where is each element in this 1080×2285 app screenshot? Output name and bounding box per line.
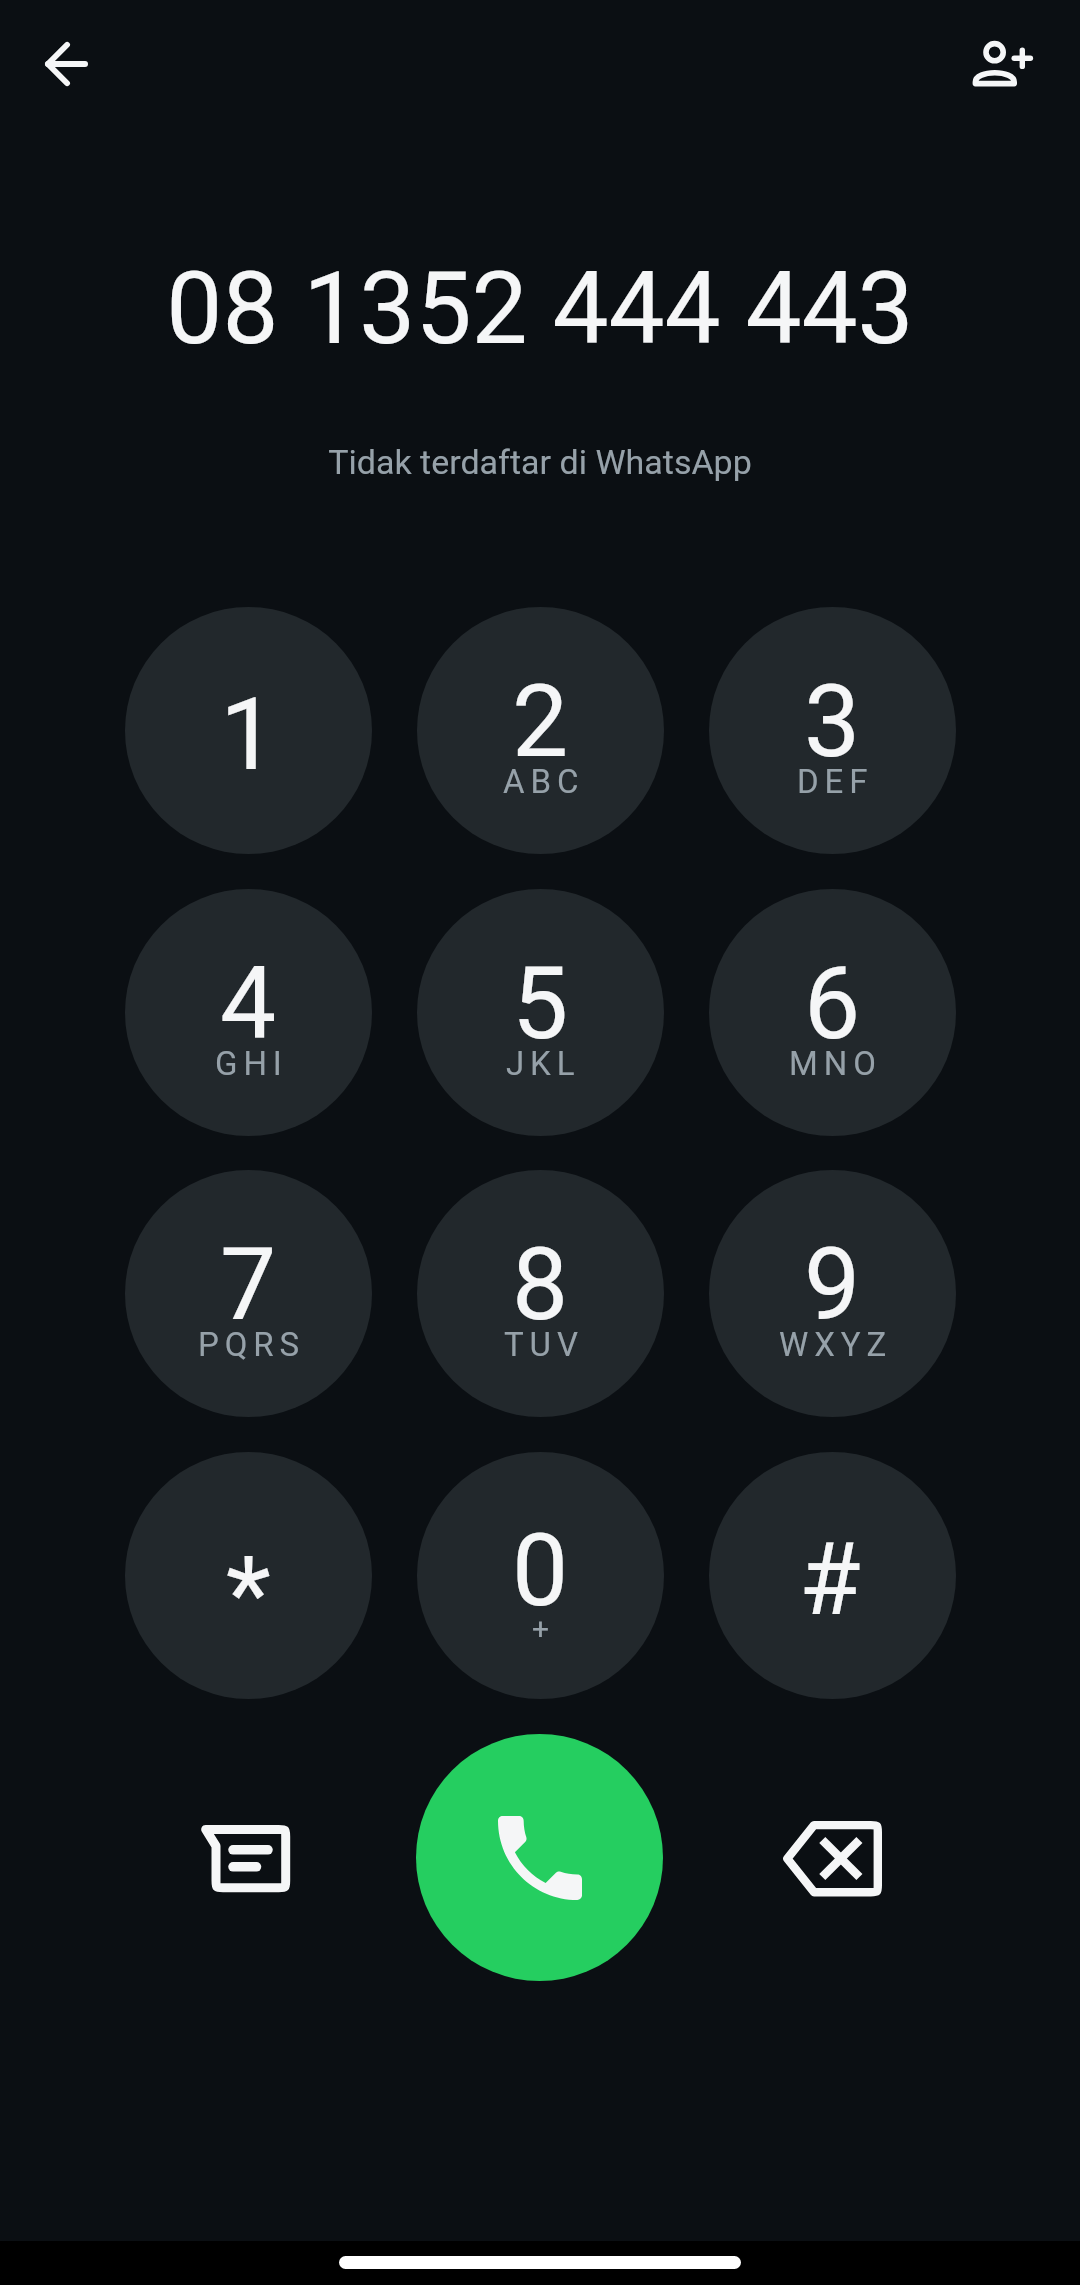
button[interactable]: 8 (417, 1170, 664, 1417)
staticText: 08 1352 444 443 (0, 250, 1080, 367)
button[interactable]: # (709, 1452, 956, 1699)
staticText: 0 (512, 1512, 569, 1629)
staticText: WXYZ (779, 1325, 893, 1364)
staticText: 7 (220, 1226, 277, 1343)
button[interactable]: Backspace (763, 1790, 903, 1930)
staticText: 6 (804, 945, 861, 1062)
button[interactable]: 9 (709, 1170, 956, 1417)
staticText: 8 (512, 1226, 569, 1343)
staticText: PQRS (198, 1325, 306, 1364)
staticText: Tidak terdaftar di WhatsApp (0, 442, 1080, 482)
staticText: GHI (215, 1044, 288, 1083)
staticText: ABC (503, 762, 585, 801)
staticText: * (226, 1534, 271, 1656)
staticText: 5 (512, 945, 569, 1062)
button[interactable]: Add contact (950, 12, 1054, 116)
button[interactable]: 6 (709, 889, 956, 1136)
staticText: 9 (804, 1226, 861, 1343)
button[interactable]: 7 (125, 1170, 372, 1417)
button[interactable]: 2 (417, 607, 664, 854)
button[interactable]: 4 (125, 889, 372, 1136)
button[interactable]: 1 (125, 607, 372, 854)
staticText: 1 (220, 676, 277, 793)
staticText: JKL (506, 1044, 581, 1083)
staticText: MNO (789, 1044, 882, 1083)
button[interactable]: 3 (709, 607, 956, 854)
button[interactable]: 5 (417, 889, 664, 1136)
staticText: 4 (220, 945, 277, 1062)
button[interactable]: Call (416, 1734, 663, 1981)
button[interactable]: Back (22, 20, 110, 108)
staticText: DEF (797, 762, 874, 801)
staticText: # (799, 1521, 861, 1638)
button[interactable]: * (125, 1452, 372, 1699)
staticText: 2 (512, 663, 569, 780)
staticText: + (532, 1611, 550, 1646)
button[interactable]: 0 (417, 1452, 664, 1699)
staticText: TUV (504, 1325, 584, 1364)
button[interactable]: Send SMS (176, 1790, 316, 1930)
staticText: 3 (804, 663, 861, 780)
